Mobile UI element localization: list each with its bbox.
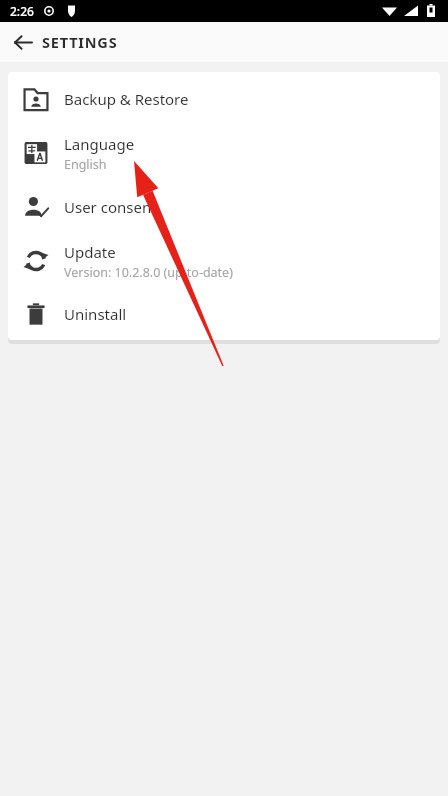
staticText: Version: 10.2.8.0 (up-to-date) <box>64 264 233 281</box>
button[interactable]: Backup & Restore <box>8 72 440 126</box>
staticText: Uninstall <box>64 304 127 324</box>
button[interactable]: Back <box>10 29 36 55</box>
staticText: Backup & Restore <box>64 89 189 109</box>
button[interactable]: Update <box>8 234 440 288</box>
button[interactable]: Language <box>8 126 440 180</box>
staticText: User consent <box>64 197 157 217</box>
staticText: SETTINGS <box>42 32 118 52</box>
button[interactable]: User consent <box>8 180 440 234</box>
button[interactable]: Uninstall <box>8 288 440 340</box>
staticText: Language <box>64 134 135 154</box>
staticText: 2:26 <box>10 3 34 19</box>
staticText: English <box>64 156 107 173</box>
staticText: Update <box>64 242 116 262</box>
